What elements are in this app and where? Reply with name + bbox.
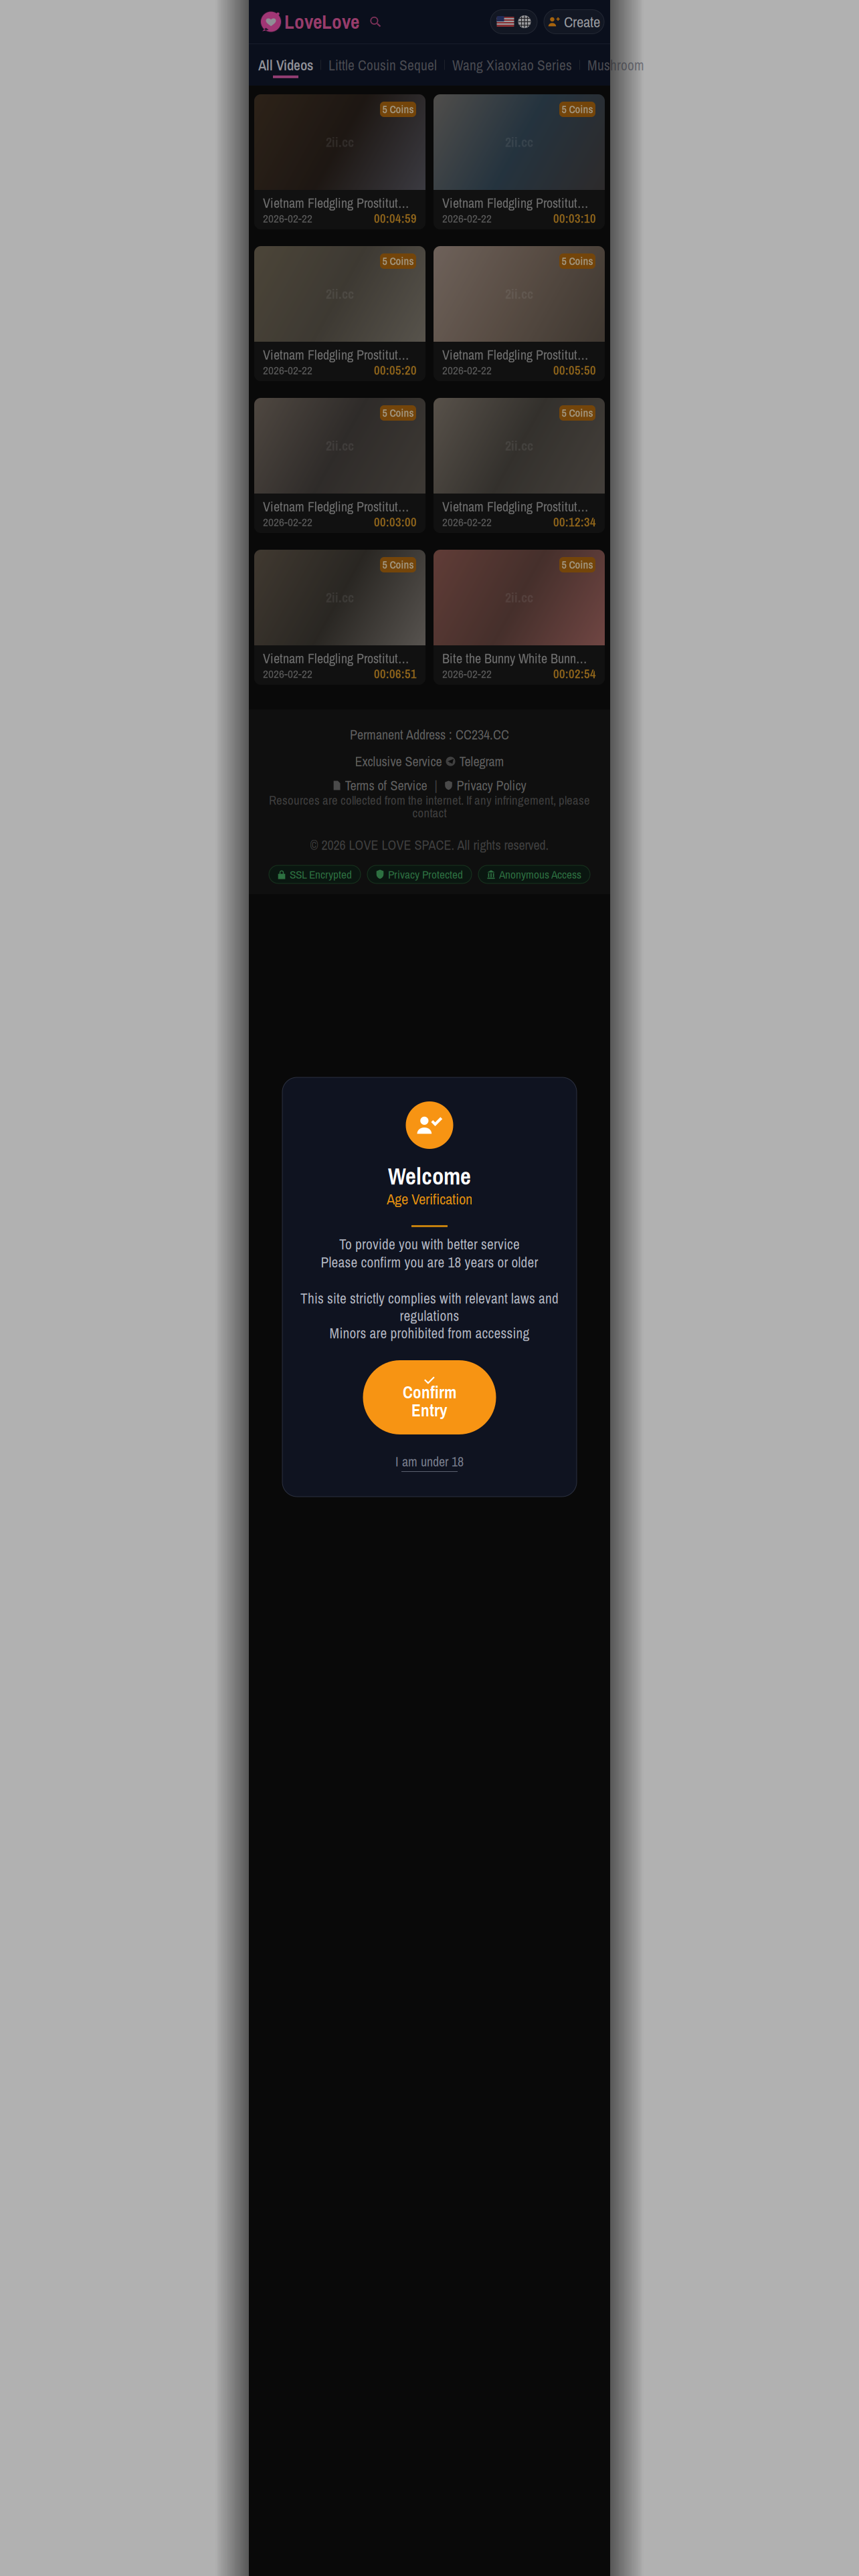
staticText: 00:02:54 — [553, 665, 596, 682]
button[interactable]: 2ii.cc — [434, 94, 605, 229]
button[interactable]: Wang Xiaoxiao Series — [445, 52, 579, 78]
staticText: Little Cousin Sequel — [328, 56, 437, 75]
staticText: Anonymous Access — [499, 867, 581, 882]
staticText: 5 Coins — [382, 254, 414, 268]
staticText: To provide you with better service — [339, 1235, 520, 1254]
staticText: 2ii.cc — [326, 588, 354, 606]
button[interactable]: Privacy Policy — [445, 776, 526, 794]
staticText: Vietnam Fledgling Prostitut… — [263, 346, 409, 364]
staticText: Wang Xiaoxiao Series — [452, 56, 572, 75]
staticText: Please confirm you are 18 years or older — [321, 1253, 538, 1272]
staticText: I am under 18 — [395, 1453, 464, 1471]
staticText: 2ii.cc — [326, 133, 354, 151]
staticText: Vietnam Fledgling Prostitut… — [263, 649, 409, 667]
staticText: LoveLove — [284, 8, 359, 35]
staticText: 2ii.cc — [505, 588, 533, 606]
staticText: 00:03:00 — [374, 514, 417, 530]
staticText: regulations — [400, 1306, 459, 1325]
staticText: | — [435, 776, 437, 794]
button[interactable]: 2ii.cc — [254, 246, 425, 381]
staticText: Vietnam Fledgling Prostitut… — [442, 498, 588, 516]
staticText: 2ii.cc — [505, 133, 533, 151]
staticText: Minors are prohibited from accessing — [329, 1324, 530, 1343]
staticText: contact — [412, 804, 447, 821]
staticText: 5 Coins — [382, 558, 414, 572]
button[interactable]: Confirm — [363, 1360, 496, 1434]
staticText: Vietnam Fledgling Prostitut… — [263, 194, 409, 212]
staticText: Privacy Protected — [388, 867, 463, 882]
staticText: 5 Coins — [562, 406, 593, 420]
staticText: 5 Coins — [562, 558, 593, 572]
staticText: Create — [564, 12, 600, 32]
staticText: 2026-02-22 — [263, 362, 312, 378]
staticText: 00:03:10 — [553, 210, 596, 227]
staticText: 2026-02-22 — [263, 666, 312, 682]
button[interactable]: All Videos — [251, 52, 320, 78]
staticText: 2ii.cc — [326, 285, 354, 303]
staticText: 2026-02-22 — [442, 666, 492, 682]
staticText: 00:04:59 — [374, 210, 417, 227]
button[interactable]: Little Cousin Sequel — [321, 52, 444, 78]
staticText: Telegram — [459, 752, 504, 770]
staticText: Vietnam Fledgling Prostitut… — [263, 498, 409, 516]
staticText: This site strictly complies with relevan… — [300, 1289, 559, 1308]
button[interactable]: Anonymous Access — [478, 865, 590, 883]
staticText: 00:12:34 — [553, 514, 596, 530]
staticText: Bite the Bunny White Bunn… — [442, 649, 587, 667]
staticText: Welcome — [388, 1160, 471, 1192]
staticText: Confirm — [403, 1381, 456, 1404]
button[interactable]: Language — [490, 10, 537, 34]
button[interactable]: Search — [359, 16, 384, 28]
staticText: 2026-02-22 — [263, 211, 312, 226]
staticText: 5 Coins — [562, 102, 593, 117]
staticText: 5 Coins — [562, 254, 593, 268]
button[interactable]: 2ii.cc — [434, 398, 605, 533]
staticText: Terms of Service — [345, 776, 427, 794]
button[interactable]: 2ii.cc — [254, 94, 425, 229]
staticText: 2026-02-22 — [263, 514, 312, 530]
button[interactable]: 2ii.cc — [254, 550, 425, 685]
staticText: 2026-02-22 — [442, 362, 492, 378]
button[interactable]: Privacy Protected — [367, 865, 472, 883]
staticText: Mushroom — [587, 56, 644, 75]
staticText: 5 Coins — [382, 102, 414, 117]
staticText: SSL Encrypted — [290, 867, 352, 882]
staticText: 2026-02-22 — [442, 514, 492, 530]
staticText: Age Verification — [387, 1189, 472, 1209]
staticText: Privacy Policy — [457, 776, 526, 794]
staticText: 00:05:20 — [374, 362, 417, 379]
staticText: © 2026 LOVE LOVE SPACE. All rights reser… — [310, 836, 549, 854]
button[interactable]: 2ii.cc — [434, 550, 605, 685]
button[interactable]: 2ii.cc — [434, 246, 605, 381]
staticText: 2026-02-22 — [442, 211, 492, 226]
button[interactable]: Create — [537, 10, 604, 34]
button[interactable]: I am under 18 — [395, 1453, 464, 1472]
staticText: Exclusive Service — [355, 752, 442, 770]
staticText: All Videos — [258, 56, 313, 75]
staticText: 00:06:51 — [374, 665, 417, 682]
staticText: 00:05:50 — [553, 362, 596, 379]
staticText: 5 Coins — [382, 406, 414, 420]
staticText: 2ii.cc — [505, 437, 533, 455]
staticText: Vietnam Fledgling Prostitut… — [442, 194, 588, 212]
staticText: Entry — [411, 1399, 448, 1422]
button[interactable]: LoveLove — [260, 8, 359, 35]
button[interactable]: Mushroom — [580, 52, 652, 78]
button[interactable]: Terms of Service — [333, 776, 427, 794]
staticText: Permanent Address : CC234.CC — [350, 726, 509, 744]
staticText: Vietnam Fledgling Prostitut… — [442, 346, 588, 364]
staticText: 2ii.cc — [326, 437, 354, 455]
staticText: 2ii.cc — [505, 285, 533, 303]
button[interactable]: 2ii.cc — [254, 398, 425, 533]
button[interactable]: SSL Encrypted — [269, 865, 361, 883]
staticText: Resources are collected from the interne… — [269, 792, 590, 809]
